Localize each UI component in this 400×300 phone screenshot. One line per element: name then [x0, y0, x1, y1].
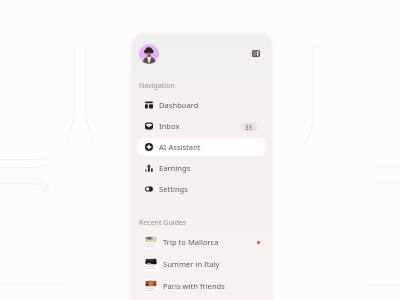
staticText: Settings: [159, 184, 188, 194]
button[interactable]: Dashboard: [138, 96, 266, 114]
button[interactable]: AI Assistant: [138, 138, 266, 156]
button[interactable]: Profile: [139, 44, 159, 64]
staticText: AI Assistant: [159, 142, 201, 152]
button[interactable]: Trip to Mallorca: [138, 232, 266, 252]
staticText: Paris with friends: [163, 281, 225, 291]
button[interactable]: Earnings: [138, 159, 266, 177]
staticText: Dashboard: [159, 100, 199, 110]
staticText: Earnings: [159, 163, 191, 173]
button[interactable]: Settings: [138, 180, 266, 198]
button[interactable]: Summer in Italy: [138, 254, 266, 274]
staticText: Navigation: [139, 81, 175, 91]
staticText: Trip to Mallorca: [163, 237, 219, 247]
staticText: Summer in Italy: [163, 259, 220, 269]
staticText: 33: [245, 123, 253, 131]
staticText: Recent Guides: [139, 218, 187, 228]
button[interactable]: Paris with friends: [138, 276, 266, 296]
staticText: Inbox: [159, 121, 180, 131]
button[interactable]: Toggle sidebar: [250, 47, 264, 61]
button[interactable]: Inbox: [138, 117, 266, 135]
